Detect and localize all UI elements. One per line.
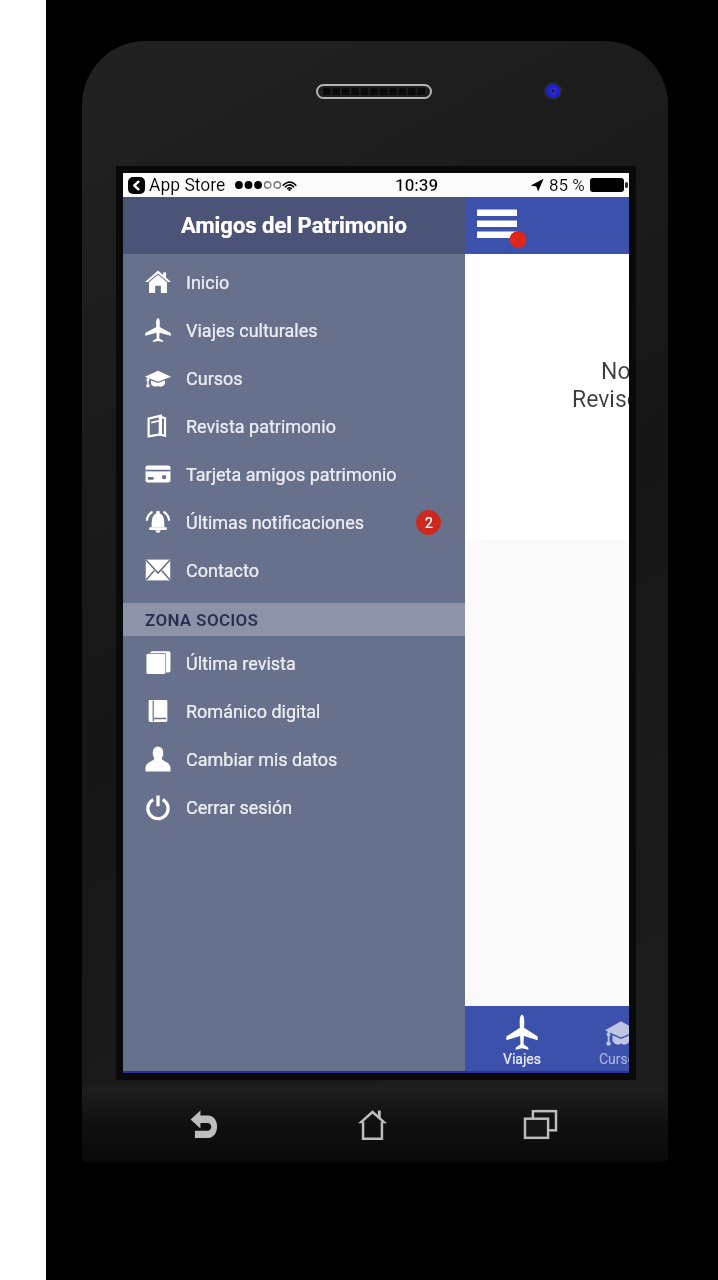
button[interactable]: Home	[288, 1086, 456, 1162]
staticText: Inicio	[186, 272, 230, 293]
button[interactable]: Última revista	[123, 639, 465, 687]
staticText: Cursos	[186, 368, 243, 389]
staticText: Románico digital	[186, 701, 321, 722]
button[interactable]: Románico digital	[123, 687, 465, 735]
staticText: Cerrar sesión	[186, 797, 293, 818]
button[interactable]: Tarjeta amigos patrimonio	[123, 450, 465, 498]
button[interactable]: Viajes	[472, 1006, 571, 1073]
staticText: Viajes culturales	[186, 320, 318, 341]
staticText: Revista patrimonio	[186, 416, 336, 437]
button[interactable]: Últimas notificaciones	[123, 498, 465, 546]
staticText: Revisela de nuevo mas tarde	[572, 386, 629, 413]
button[interactable]: Cambiar mis datos	[123, 735, 465, 783]
button[interactable]: Revista patrimonio	[123, 402, 465, 450]
staticText: Última revista	[186, 653, 296, 674]
staticText: Contacto	[186, 560, 260, 581]
staticText: App Store	[149, 175, 226, 196]
button[interactable]: Back to App Store	[128, 177, 145, 194]
staticText: Tarjeta amigos patrimonio	[186, 464, 397, 485]
button[interactable]: Back	[120, 1086, 288, 1162]
staticText: 2	[425, 515, 433, 531]
button[interactable]: Cursos	[571, 1006, 629, 1073]
staticText: 85 %	[549, 175, 585, 195]
button[interactable]: Inicio	[123, 258, 465, 306]
button[interactable]: Viajes culturales	[123, 306, 465, 354]
staticText: ZONA SOCIOS	[145, 610, 259, 630]
staticText: 10:39	[395, 175, 439, 195]
staticText: Amigos del Patrimonio	[181, 213, 407, 239]
button[interactable]: Cerrar sesión	[123, 783, 465, 831]
button[interactable]: Recent apps	[456, 1086, 624, 1162]
staticText: No hay ninguna noticia	[601, 358, 629, 385]
staticText: Últimas notificaciones	[186, 512, 365, 533]
staticText: Viajes	[503, 1051, 541, 1067]
button[interactable]: Open navigation menu	[465, 197, 539, 254]
button[interactable]: Cursos	[123, 354, 465, 402]
staticText: Cambiar mis datos	[186, 749, 338, 770]
staticText: Cursos	[599, 1051, 629, 1067]
button[interactable]: Contacto	[123, 546, 465, 594]
